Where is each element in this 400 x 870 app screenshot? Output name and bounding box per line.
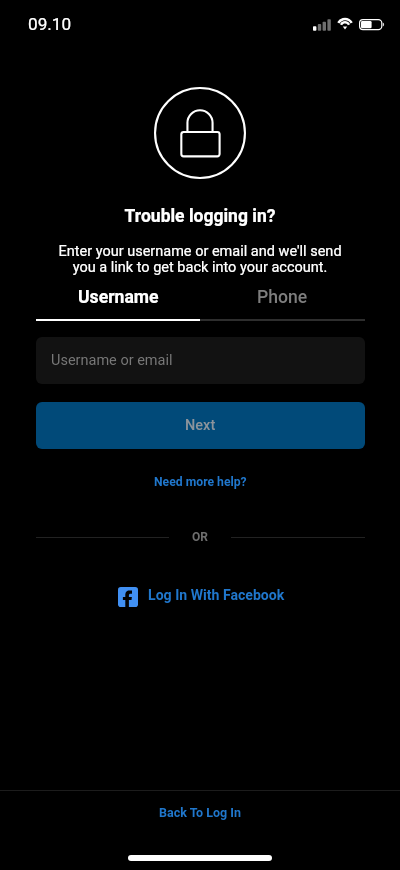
staticText: Next [185, 417, 216, 434]
staticText: 09.10 [28, 14, 72, 34]
button[interactable]: Phone [200, 282, 365, 319]
button[interactable]: Need more help? [146, 470, 255, 494]
staticText: Enter your username or email and we'll s… [18, 243, 382, 276]
staticText: OR [192, 530, 208, 544]
staticText: Back To Log In [159, 805, 242, 820]
button[interactable]: Log In With Facebook [110, 580, 292, 613]
button[interactable]: Username or email [36, 337, 365, 384]
staticText: Need more help? [154, 475, 247, 489]
staticText: Phone [257, 287, 308, 308]
staticText: Username or email [51, 352, 173, 369]
button[interactable]: Next [36, 402, 365, 449]
staticText: Log In With Facebook [148, 587, 285, 604]
staticText: Username [78, 287, 159, 308]
staticText: Trouble logging in? [0, 206, 400, 227]
button[interactable]: Username [36, 282, 200, 319]
button[interactable]: Back To Log In [0, 791, 400, 833]
